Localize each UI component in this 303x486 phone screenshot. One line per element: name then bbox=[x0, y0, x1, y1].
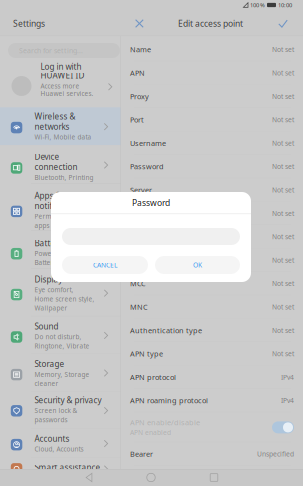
staticText: 100 % bbox=[250, 1, 265, 9]
staticText: MCC bbox=[130, 278, 146, 288]
staticText: Not set bbox=[272, 45, 294, 54]
staticText: IPv4 bbox=[281, 373, 294, 382]
staticText: apps bbox=[34, 221, 49, 230]
button[interactable]: Username bbox=[121, 132, 303, 155]
staticText: 10:00 bbox=[278, 1, 292, 9]
button[interactable]: Accounts bbox=[0, 429, 121, 458]
staticText: Wallpaper bbox=[34, 304, 67, 312]
button[interactable]: Device bbox=[0, 145, 121, 184]
staticText: Bearer bbox=[130, 449, 153, 459]
button[interactable]: APN bbox=[121, 61, 303, 85]
staticText: Ringtone, Vibrate bbox=[34, 341, 89, 350]
button[interactable]: MMS proxy bbox=[121, 225, 303, 249]
staticText: Password bbox=[130, 161, 164, 171]
button[interactable]: Port bbox=[121, 108, 303, 132]
button[interactable]: Cancel bbox=[0, 11, 22, 36]
button[interactable]: Save bbox=[0, 11, 22, 36]
button[interactable]: MMSC bbox=[121, 202, 303, 225]
staticText: Name bbox=[130, 44, 151, 54]
staticText: HUAWEI ID bbox=[41, 70, 85, 81]
staticText: Wi-Fi, Mobile data bbox=[34, 133, 91, 141]
button[interactable]: MNC bbox=[121, 295, 303, 319]
button[interactable]: Display bbox=[0, 269, 121, 316]
staticText: IPv4 bbox=[281, 396, 294, 405]
staticText: Permissions, Default bbox=[34, 212, 99, 221]
staticText: APN type bbox=[130, 349, 163, 359]
staticText: Search for setting... bbox=[19, 46, 83, 55]
staticText: MNC bbox=[130, 302, 148, 312]
staticText: Not set bbox=[272, 115, 294, 124]
staticText: Sound bbox=[34, 321, 58, 332]
staticText: Authentication type bbox=[130, 325, 202, 335]
button[interactable]: Password bbox=[121, 155, 303, 178]
button[interactable]: APN roaming protocol bbox=[121, 389, 303, 412]
staticText: Power saving mode, bbox=[34, 249, 98, 258]
staticText: Accounts bbox=[34, 433, 69, 444]
staticText: Password bbox=[132, 197, 170, 208]
staticText: CANCEL bbox=[93, 260, 117, 270]
staticText: MMS port bbox=[130, 255, 165, 265]
staticText: Not set bbox=[272, 232, 294, 241]
staticText: Memory, Storage bbox=[34, 370, 89, 379]
staticText: Bluetooth, Printing bbox=[34, 173, 93, 182]
staticText: Not set bbox=[272, 139, 294, 148]
button[interactable]: Wireless & bbox=[0, 107, 121, 145]
staticText: APN enabled bbox=[130, 428, 171, 437]
button[interactable]: OK bbox=[51, 192, 136, 210]
staticText: Not set bbox=[272, 92, 294, 101]
staticText: Not set bbox=[272, 185, 294, 194]
staticText: Huawei services. bbox=[41, 89, 94, 98]
button[interactable]: Proxy bbox=[121, 85, 303, 108]
staticText: Not set bbox=[272, 302, 294, 311]
button[interactable]: Apps & bbox=[0, 184, 121, 231]
staticText: APN bbox=[130, 68, 145, 78]
button[interactable]: CANCEL bbox=[51, 192, 137, 210]
staticText: Storage bbox=[34, 358, 64, 369]
button[interactable]: Storage bbox=[0, 354, 121, 392]
button[interactable]: APN type bbox=[121, 342, 303, 366]
button[interactable]: MMS port bbox=[121, 249, 303, 272]
button[interactable]: APN enable/disable bbox=[121, 412, 303, 442]
staticText: Cloud, Accounts bbox=[34, 445, 83, 453]
staticText: Battery usage bbox=[34, 258, 77, 267]
button[interactable]: APN protocol bbox=[121, 366, 303, 389]
staticText: Not set bbox=[272, 349, 294, 358]
staticText: Device bbox=[34, 151, 59, 162]
staticText: notifications bbox=[34, 200, 82, 211]
button[interactable]: Log in with bbox=[0, 36, 121, 86]
button[interactable]: Security & privacy bbox=[0, 392, 121, 429]
staticText: Eye comfort, bbox=[34, 285, 73, 294]
button[interactable]: Battery bbox=[0, 231, 121, 269]
staticText: Log in with bbox=[41, 61, 82, 72]
button[interactable]: MCC bbox=[121, 272, 303, 295]
staticText: Not set bbox=[272, 256, 294, 265]
button[interactable]: Server bbox=[121, 178, 303, 202]
staticText: APN protocol bbox=[130, 372, 176, 382]
staticText: Do not disturb, bbox=[34, 332, 81, 341]
staticText: MMSC bbox=[130, 208, 153, 218]
staticText: Proxy bbox=[130, 91, 149, 101]
staticText: Unspecified bbox=[257, 449, 294, 458]
staticText: Display bbox=[34, 274, 62, 285]
staticText: Edit access point bbox=[178, 18, 243, 29]
button[interactable]: Name bbox=[121, 38, 303, 61]
button[interactable]: Bearer bbox=[121, 442, 303, 466]
staticText: Security & privacy bbox=[34, 395, 101, 406]
staticText: Wireless & bbox=[34, 111, 75, 122]
button[interactable]: Authentication type bbox=[121, 319, 303, 342]
staticText: connection bbox=[34, 161, 77, 172]
staticText: Smart assistance bbox=[34, 462, 100, 473]
staticText: Home screen style, bbox=[34, 294, 94, 303]
staticText: Port bbox=[130, 115, 144, 125]
button[interactable]: Sound bbox=[0, 316, 121, 354]
staticText: Username bbox=[130, 138, 166, 148]
staticText: Settings bbox=[13, 18, 45, 29]
button[interactable]: Search for setting... bbox=[0, 36, 112, 51]
button[interactable]: Smart assistance bbox=[0, 458, 121, 480]
staticText: APN enable/disable bbox=[130, 417, 200, 427]
staticText: networks bbox=[34, 121, 69, 132]
